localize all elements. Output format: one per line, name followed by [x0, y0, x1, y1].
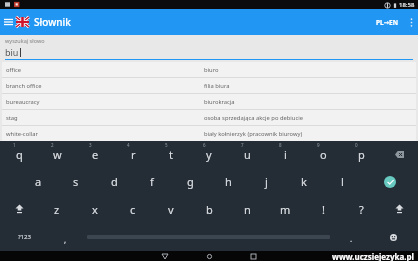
button[interactable]: r	[114, 141, 152, 168]
button[interactable]: office	[2, 62, 416, 77]
staticText: d	[111, 174, 118, 189]
staticText: x	[92, 202, 98, 217]
button[interactable]: Backspace	[380, 141, 418, 168]
staticText: i	[284, 147, 287, 162]
button[interactable]: white-collar	[2, 126, 416, 141]
button[interactable]: u	[228, 141, 266, 168]
button[interactable]: x	[76, 195, 114, 223]
staticText: .	[350, 233, 353, 244]
button[interactable]: .	[334, 223, 369, 251]
button[interactable]: Space	[83, 223, 334, 251]
staticText: f	[150, 174, 154, 189]
staticText: l	[341, 174, 344, 189]
staticText: osoba sprzedająca akcje po debiucie	[204, 114, 303, 122]
staticText: u	[244, 147, 251, 162]
button[interactable]: a	[19, 168, 57, 195]
staticText: m	[280, 202, 291, 217]
staticText: p	[358, 147, 365, 162]
staticText: q	[16, 147, 23, 162]
staticText: ?	[359, 202, 364, 217]
button[interactable]: e	[76, 141, 114, 168]
staticText: 6	[203, 142, 206, 148]
button[interactable]: bureaucracy	[2, 94, 416, 109]
button[interactable]: Enter	[361, 168, 418, 195]
button[interactable]: g	[171, 168, 209, 195]
button[interactable]: m	[266, 195, 304, 223]
staticText: white-collar	[6, 130, 38, 138]
staticText: PL→EN	[376, 18, 399, 27]
staticText: w	[53, 147, 62, 162]
button[interactable]: branch office	[2, 78, 416, 93]
staticText: 5	[165, 142, 168, 148]
button[interactable]: f	[133, 168, 171, 195]
staticText: j	[265, 174, 268, 189]
button[interactable]: stag	[2, 110, 416, 125]
staticText: filia biura	[204, 82, 230, 90]
staticText: c	[130, 202, 136, 217]
button[interactable]: z	[38, 195, 76, 223]
button[interactable]: PL→EN	[371, 9, 404, 35]
button[interactable]: t	[152, 141, 190, 168]
button[interactable]: v	[152, 195, 190, 223]
staticText: 7	[241, 142, 244, 148]
button[interactable]: p	[342, 141, 380, 168]
button[interactable]: ?	[342, 195, 380, 223]
button[interactable]: ,	[48, 223, 83, 251]
staticText: s	[73, 174, 79, 189]
button[interactable]: !	[304, 195, 342, 223]
button[interactable]: h	[209, 168, 247, 195]
button[interactable]: j	[247, 168, 285, 195]
button[interactable]: o	[304, 141, 342, 168]
staticText: y	[206, 147, 212, 162]
staticText: r	[131, 147, 136, 162]
staticText: e	[92, 147, 99, 162]
staticText: t	[169, 147, 173, 162]
button[interactable]: Home	[194, 251, 224, 261]
button[interactable]: i	[266, 141, 304, 168]
button[interactable]: ?123	[0, 223, 48, 251]
staticText: branch office	[6, 82, 42, 90]
button[interactable]: Recent apps	[238, 251, 268, 261]
staticText: ,	[64, 234, 67, 245]
staticText: o	[320, 147, 327, 162]
staticText: h	[225, 174, 232, 189]
button[interactable]: y	[190, 141, 228, 168]
button[interactable]: Emoji	[369, 223, 418, 251]
staticText: wyszukaj słowo	[5, 37, 45, 44]
staticText: www.uczsiejezyka.pl	[332, 251, 414, 261]
staticText: biuro	[204, 66, 219, 74]
button[interactable]: k	[285, 168, 323, 195]
staticText: Słownik	[34, 15, 71, 29]
button[interactable]: Back	[150, 251, 180, 261]
button[interactable]: More options	[404, 9, 418, 35]
button[interactable]: b	[190, 195, 228, 223]
staticText: stag	[6, 114, 18, 122]
staticText: z	[54, 202, 60, 217]
staticText: v	[168, 202, 174, 217]
staticText: !	[322, 202, 325, 217]
staticText: biurokracja	[204, 98, 235, 106]
button[interactable]: Shift	[380, 195, 418, 223]
staticText: 1	[13, 142, 16, 148]
button[interactable]: biu	[5, 46, 413, 60]
staticText: 8	[279, 142, 282, 148]
button[interactable]: Open navigation drawer	[0, 9, 16, 35]
button[interactable]: n	[228, 195, 266, 223]
staticText: k	[301, 174, 307, 189]
staticText: biu	[5, 46, 19, 58]
button[interactable]: q	[0, 141, 38, 168]
button[interactable]: c	[114, 195, 152, 223]
staticText: office	[6, 66, 22, 74]
button[interactable]: Shift	[0, 195, 38, 223]
staticText: a	[35, 174, 42, 189]
staticText: 18:58	[399, 1, 415, 9]
button[interactable]: s	[57, 168, 95, 195]
staticText: ?123	[18, 233, 31, 241]
staticText: 9	[317, 142, 320, 148]
staticText: biały kołnierzyk (pracownik biurowy)	[204, 130, 303, 138]
staticText: bureaucracy	[6, 98, 40, 106]
staticText: 0	[355, 142, 358, 148]
button[interactable]: l	[323, 168, 361, 195]
button[interactable]: w	[38, 141, 76, 168]
button[interactable]: d	[95, 168, 133, 195]
